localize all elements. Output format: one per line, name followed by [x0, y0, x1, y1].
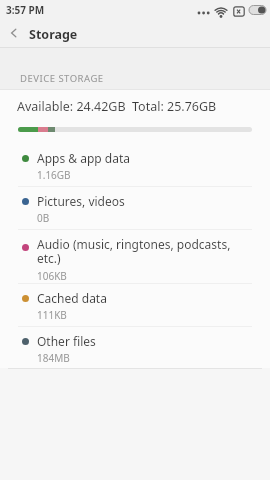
staticText: 3:57 PM — [6, 3, 45, 17]
staticText: Pictures, videos — [37, 193, 125, 209]
button[interactable]: Apps & app data — [0, 144, 270, 187]
button[interactable]: Pictures, videos — [0, 187, 270, 230]
staticText: 0B — [37, 211, 50, 225]
staticText: 106KB — [37, 269, 67, 283]
staticText: Apps & app data — [37, 150, 130, 166]
staticText: Cached data — [37, 290, 107, 306]
staticText: 1.16GB — [37, 168, 71, 182]
button[interactable]: Cached data — [0, 284, 270, 327]
staticText: 111KB — [37, 308, 67, 322]
staticText: DEVICE STORAGE — [20, 72, 104, 85]
staticText: Storage — [29, 26, 78, 43]
button[interactable]: Other files — [0, 327, 270, 368]
staticText: 184MB — [37, 351, 70, 365]
staticText: Total: 25.76GB — [132, 98, 217, 115]
button[interactable]: Storage — [0, 22, 270, 48]
staticText: Available: 24.42GB — [17, 98, 126, 115]
staticText: Audio (music, ringtones, podcasts, etc.) — [37, 236, 231, 267]
button[interactable]: Audio (music, ringtones, podcasts, etc.) — [0, 230, 270, 284]
staticText: Other files — [37, 333, 96, 349]
